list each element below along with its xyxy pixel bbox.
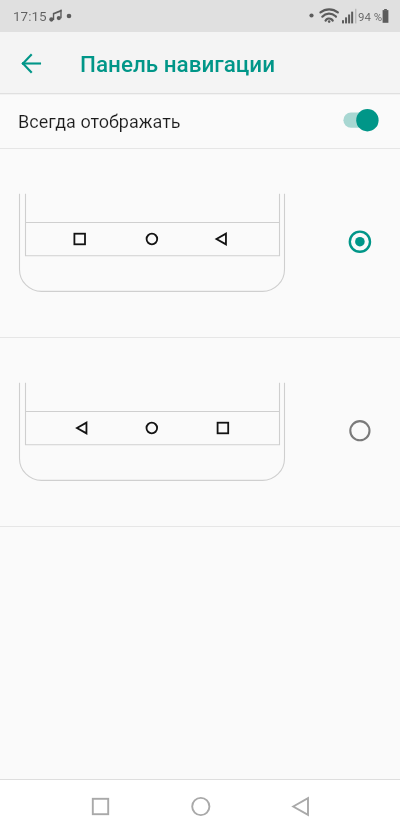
staticText: Всегда отображать bbox=[18, 111, 181, 132]
button[interactable]: Всегда отображать bbox=[0, 95, 400, 148]
button[interactable]: Home bbox=[176, 783, 224, 831]
button[interactable]: Recents Home Back layout bbox=[0, 149, 400, 337]
button[interactable]: Back bbox=[276, 783, 324, 831]
button[interactable]: Recents bbox=[76, 783, 124, 831]
staticText: 17:15 bbox=[13, 8, 47, 24]
staticText: 94 % bbox=[358, 10, 383, 23]
staticText: Панель навигации bbox=[80, 51, 276, 77]
button[interactable]: Back Home Recents layout bbox=[0, 338, 400, 526]
button[interactable]: Back bbox=[9, 41, 53, 85]
